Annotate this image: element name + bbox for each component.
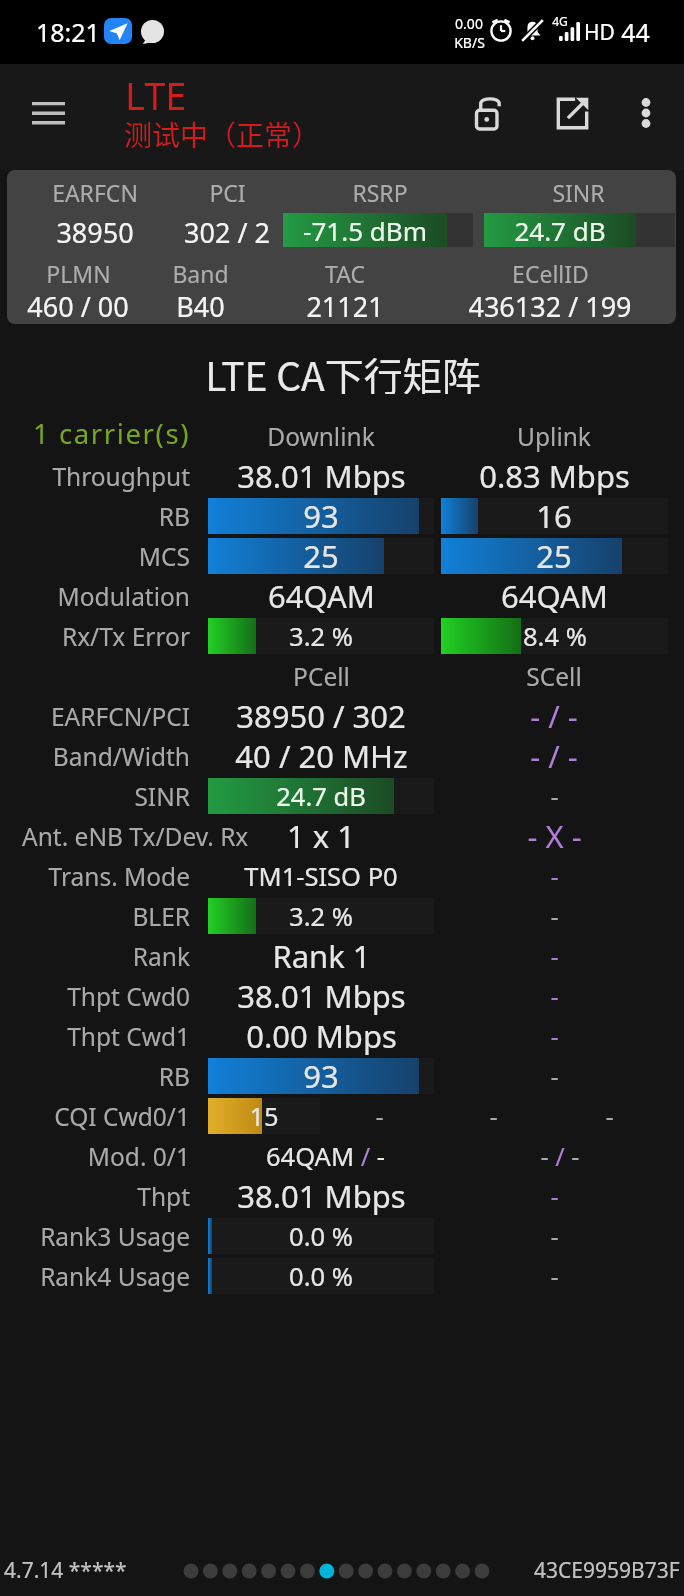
staticText: - X - xyxy=(527,815,582,857)
staticText: - xyxy=(550,899,559,934)
staticText: - xyxy=(489,1099,498,1134)
staticText: 16 xyxy=(536,495,572,537)
staticText: 43CE9959B73F xyxy=(534,1556,680,1585)
staticText: MCS xyxy=(138,540,190,573)
staticText: 38.01 Mbps xyxy=(237,455,406,497)
staticText: Rank 1 xyxy=(272,935,371,977)
staticText: - / - xyxy=(540,1139,580,1174)
staticText: Modulation xyxy=(57,580,190,613)
staticText: - xyxy=(375,1099,384,1134)
staticText: CQI Cwd0/1 xyxy=(54,1100,190,1133)
staticText: 436132 / 199 xyxy=(468,288,632,325)
staticText: - xyxy=(550,779,559,814)
staticText: 38950 xyxy=(56,214,134,251)
staticText: Band xyxy=(172,258,229,289)
button[interactable]: Menu xyxy=(12,89,82,137)
staticText: BLER xyxy=(132,900,190,933)
staticText: 15 xyxy=(249,1099,279,1134)
staticText: Throughput xyxy=(52,460,190,493)
staticText: PCell xyxy=(293,660,350,693)
staticText: Downlink xyxy=(267,420,375,453)
staticText: 0.00 xyxy=(455,14,483,33)
staticText: - xyxy=(550,1059,559,1094)
staticText: Band/Width xyxy=(52,740,190,773)
staticText: - xyxy=(550,1259,559,1294)
staticText: - / - xyxy=(530,735,578,777)
staticText: 24.7 dB xyxy=(514,213,606,248)
staticText: 93 xyxy=(303,495,339,537)
staticText: Trans. Mode xyxy=(48,860,190,893)
staticText: Uplink xyxy=(517,420,591,453)
staticText: - xyxy=(550,1019,559,1054)
staticText: SCell xyxy=(526,660,582,693)
staticText: 3.2 % xyxy=(289,899,353,934)
staticText: - xyxy=(550,859,559,894)
staticText: 4.7.14 ***** xyxy=(4,1556,127,1585)
staticText: 0.0 % xyxy=(289,1259,353,1294)
staticText: HD xyxy=(584,18,615,47)
staticText: 4G xyxy=(552,13,568,29)
staticText: EARFCN/PCI xyxy=(50,700,190,733)
staticText: Rank xyxy=(132,940,190,973)
staticText: 8.4 % xyxy=(523,619,587,654)
button[interactable]: More options xyxy=(618,88,674,138)
staticText: - xyxy=(550,1219,559,1254)
staticText: 460 / 00 xyxy=(27,288,129,325)
staticText: 93 xyxy=(303,1055,339,1097)
staticText: RB xyxy=(158,1060,190,1093)
staticText: 0.0 % xyxy=(289,1219,353,1254)
staticText: 25 xyxy=(536,535,572,577)
staticText: ECellID xyxy=(512,258,589,289)
button[interactable]: Share xyxy=(538,88,606,138)
staticText: 64QAM xyxy=(501,575,608,617)
staticText: B40 xyxy=(176,288,225,325)
staticText: 38950 / 302 xyxy=(236,695,406,737)
staticText: 40 / 20 MHz xyxy=(235,735,408,777)
staticText: 38.01 Mbps xyxy=(237,975,406,1017)
staticText: 测试中（正常） xyxy=(124,114,321,155)
button[interactable]: Unlock xyxy=(454,88,522,138)
staticText: 302 / 2 xyxy=(184,214,270,251)
staticText: KB/S xyxy=(454,33,485,52)
staticText: LTE CA下行矩阵 xyxy=(205,346,481,394)
staticText: - xyxy=(550,1179,559,1214)
staticText: Ant. eNB Tx/Dev. Rx xyxy=(22,820,249,853)
staticText: PLMN xyxy=(46,258,111,289)
staticText: -71.5 dBm xyxy=(303,213,427,248)
staticText: 0.00 Mbps xyxy=(246,1015,397,1057)
staticText: RSRP xyxy=(352,177,408,208)
staticText: 1 carrier(s) xyxy=(32,415,190,452)
staticText: Mod. 0/1 xyxy=(87,1140,190,1173)
staticText: - xyxy=(550,979,559,1014)
staticText: EARFCN xyxy=(52,177,138,208)
staticText: - xyxy=(550,939,559,974)
staticText: RB xyxy=(158,500,190,533)
staticText: 44 xyxy=(621,15,650,49)
staticText: 1 x 1 xyxy=(287,815,355,857)
staticText: 25 xyxy=(303,535,339,577)
staticText: 24.7 dB xyxy=(276,779,366,814)
staticText: Thpt xyxy=(137,1180,190,1213)
staticText: Rx/Tx Error xyxy=(61,620,190,653)
staticText: SINR xyxy=(552,177,605,208)
staticText: TM1-SISO P0 xyxy=(244,859,398,894)
staticText: 64QAM / - xyxy=(266,1139,385,1174)
staticText: - / - xyxy=(530,695,578,737)
staticText: TAC xyxy=(325,258,365,289)
staticText: Rank3 Usage xyxy=(40,1220,190,1253)
staticText: 38.01 Mbps xyxy=(237,1175,406,1217)
staticText: 0.83 Mbps xyxy=(479,455,630,497)
staticText: 18:21 xyxy=(36,15,100,49)
staticText: SINR xyxy=(134,780,190,813)
staticText: Thpt Cwd1 xyxy=(67,1020,190,1053)
staticText: 21121 xyxy=(306,288,384,325)
staticText: 64QAM xyxy=(268,575,375,617)
staticText: PCI xyxy=(209,177,246,208)
staticText: - xyxy=(605,1099,614,1134)
staticText: Thpt Cwd0 xyxy=(67,980,190,1013)
staticText: 3.2 % xyxy=(289,619,353,654)
staticText: Rank4 Usage xyxy=(40,1260,190,1293)
staticText: LTE xyxy=(125,69,187,121)
